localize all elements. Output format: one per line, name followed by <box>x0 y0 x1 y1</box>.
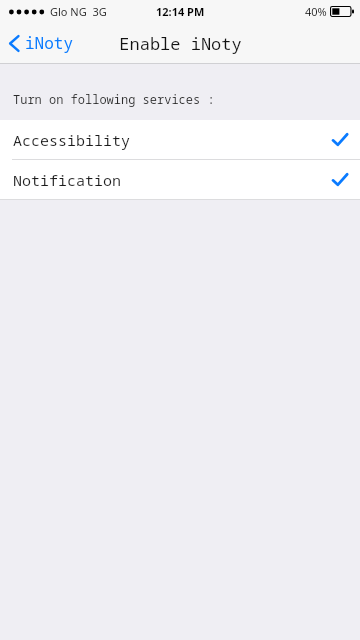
staticText: Glo NG 3G <box>50 4 107 19</box>
button[interactable]: Accessibility <box>0 120 360 159</box>
staticText: Accessibility <box>13 130 131 150</box>
staticText: iNoty <box>25 32 74 54</box>
button[interactable]: iNoty <box>0 28 82 58</box>
staticText: Notification <box>13 170 122 190</box>
staticText: Turn on following services : <box>13 91 215 107</box>
button[interactable]: Notification <box>0 160 360 199</box>
staticText: 40% <box>305 4 327 19</box>
staticText: Enable iNoty <box>119 32 242 55</box>
other: Enabled <box>332 172 348 188</box>
other: Enabled <box>332 132 348 148</box>
staticText: 12:14 PM <box>156 4 205 19</box>
